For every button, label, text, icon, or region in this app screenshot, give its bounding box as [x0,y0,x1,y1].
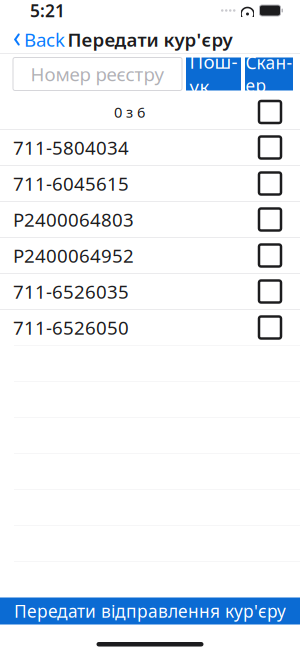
button[interactable]: Передати відправлення кур'єру [0,597,300,624]
staticText: 5:21 [30,0,65,22]
staticText: Сканер [245,51,292,97]
button[interactable]: 711-6526050 [0,309,300,345]
staticText: Номер реєстру [30,62,164,86]
staticText: 711-6526035 [13,279,129,304]
button[interactable]: P2400064952 [0,237,300,273]
staticText: 711-5804034 [13,135,129,160]
staticText: Пошук [189,49,237,99]
button[interactable]: 711-6045615 [0,165,300,201]
button[interactable]: Back [0,21,65,58]
staticText: 711-6045615 [13,171,129,196]
staticText: 711-6526050 [13,315,129,340]
button[interactable]: 711-6526035 [0,273,300,309]
staticText: Передати відправлення кур'єру [14,599,286,622]
button[interactable]: Сканер [245,57,293,90]
staticText: P2400064803 [13,207,134,232]
staticText: P2400064952 [13,243,134,268]
staticText: Передати кур'єру [67,27,232,52]
button[interactable]: 711-5804034 [0,129,300,165]
staticText: Back [24,27,65,52]
button[interactable]: P2400064803 [0,201,300,237]
button[interactable]: Пошук [186,57,241,90]
staticText: 0 з 6 [114,102,145,122]
